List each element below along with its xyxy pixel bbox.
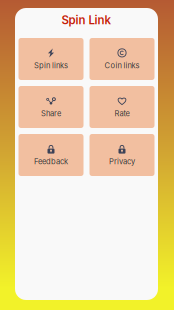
button[interactable]: Share xyxy=(18,86,83,128)
button[interactable]: Rate xyxy=(89,86,154,128)
staticText: Rate xyxy=(114,109,129,118)
button[interactable]: Coin links xyxy=(89,38,154,80)
staticText: Spin links xyxy=(34,61,68,70)
button[interactable]: Feedback xyxy=(18,134,83,176)
staticText: Coin links xyxy=(104,61,139,70)
staticText: Privacy xyxy=(109,157,135,166)
staticText: Feedback xyxy=(34,157,68,166)
staticText: Spin Link xyxy=(61,13,111,27)
staticText: Share xyxy=(41,109,61,118)
button[interactable]: Privacy xyxy=(89,134,154,176)
button[interactable]: Spin links xyxy=(18,38,83,80)
